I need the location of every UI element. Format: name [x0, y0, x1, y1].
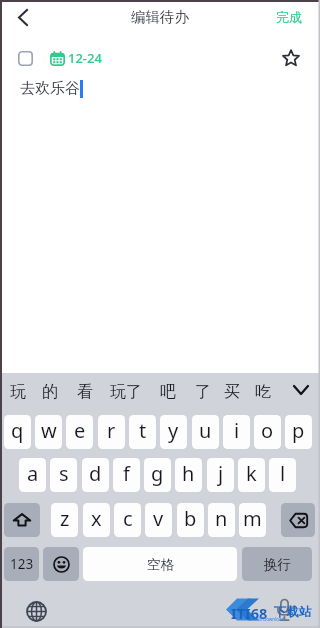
staticText: e: [74, 417, 86, 444]
staticText: b: [184, 505, 197, 532]
staticText: 玩: [10, 382, 26, 402]
staticText: g: [151, 460, 164, 487]
button[interactable]: Star: [282, 49, 300, 67]
button[interactable]: l: [269, 458, 296, 492]
staticText: v: [153, 505, 164, 532]
button[interactable]: c: [114, 503, 141, 537]
button[interactable]: 完成: [276, 9, 302, 25]
button[interactable]: d: [82, 458, 109, 492]
button[interactable]: r: [98, 415, 125, 449]
staticText: u: [199, 417, 212, 444]
staticText: x: [91, 505, 102, 532]
staticText: 编辑待办: [131, 8, 189, 26]
button[interactable]: z: [51, 503, 78, 537]
button[interactable]: 了: [189, 379, 216, 405]
staticText: 完成: [276, 9, 302, 25]
button[interactable]: p: [285, 415, 312, 449]
button[interactable]: o: [254, 415, 281, 449]
staticText: 去欢乐谷: [20, 79, 80, 98]
button[interactable]: 吧: [154, 379, 181, 405]
button[interactable]: i: [223, 415, 250, 449]
button[interactable]: 的: [36, 379, 63, 405]
button[interactable]: n: [208, 503, 235, 537]
staticText: a: [27, 460, 39, 487]
staticText: p: [292, 417, 305, 444]
button[interactable]: 123: [4, 547, 39, 581]
staticText: m: [243, 505, 262, 532]
staticText: j: [218, 460, 224, 487]
staticText: q: [11, 417, 24, 444]
staticText: o: [261, 417, 274, 444]
staticText: i: [234, 417, 240, 444]
staticText: 看: [77, 382, 93, 402]
staticText: d: [89, 460, 102, 487]
button[interactable]: y: [160, 415, 187, 449]
staticText: ITI68: [231, 603, 268, 623]
staticText: 123: [10, 555, 34, 573]
staticText: 玩了: [110, 382, 142, 402]
button[interactable]: x: [83, 503, 110, 537]
staticText: z: [60, 505, 70, 532]
staticText: c: [123, 505, 133, 532]
staticText: 换行: [264, 556, 291, 573]
button[interactable]: g: [144, 458, 171, 492]
button[interactable]: u: [192, 415, 219, 449]
staticText: h: [182, 460, 195, 487]
staticText: y: [168, 417, 179, 444]
staticText: 下载站: [274, 604, 312, 620]
button[interactable]: j: [207, 458, 234, 492]
button[interactable]: h: [175, 458, 202, 492]
button[interactable]: Collapse keyboard: [288, 375, 314, 405]
staticText: 空格: [147, 556, 174, 573]
button[interactable]: 玩了: [105, 379, 147, 405]
button[interactable]: Emoji: [43, 547, 79, 581]
button[interactable]: t: [129, 415, 156, 449]
staticText: 吃: [255, 382, 271, 402]
button[interactable]: w: [35, 415, 62, 449]
button[interactable]: 换行: [242, 547, 312, 581]
staticText: 吧: [160, 382, 176, 402]
button[interactable]: 玩: [4, 379, 31, 405]
staticText: w: [41, 417, 57, 444]
staticText: 买: [224, 382, 240, 402]
button[interactable]: m: [239, 503, 266, 537]
button[interactable]: a: [19, 458, 46, 492]
staticText: k: [246, 460, 257, 487]
staticText: t: [139, 417, 147, 444]
staticText: l: [280, 460, 286, 487]
button[interactable]: f: [113, 458, 140, 492]
button[interactable]: 看: [71, 379, 98, 405]
button[interactable]: 买: [218, 379, 245, 405]
staticText: 了: [195, 382, 211, 402]
button[interactable]: Voice input: [272, 598, 296, 622]
button[interactable]: Toggle done: [18, 51, 33, 66]
button[interactable]: Back: [10, 4, 36, 30]
button[interactable]: b: [177, 503, 204, 537]
button[interactable]: 吃: [249, 379, 276, 405]
button[interactable]: v: [145, 503, 172, 537]
button[interactable]: s: [50, 458, 77, 492]
staticText: r: [107, 417, 116, 444]
staticText: f: [123, 460, 130, 487]
button[interactable]: Shift: [4, 503, 40, 537]
button[interactable]: 空格: [83, 547, 237, 581]
button[interactable]: k: [238, 458, 265, 492]
staticText: 的: [42, 382, 58, 402]
button[interactable]: e: [66, 415, 93, 449]
staticText: IT168 Download: [250, 616, 285, 622]
button[interactable]: Backspace: [281, 503, 315, 537]
button[interactable]: q: [4, 415, 31, 449]
button[interactable]: Switch language: [24, 599, 48, 623]
staticText: 12-24: [68, 49, 102, 67]
staticText: s: [59, 460, 69, 487]
staticText: n: [215, 505, 228, 532]
